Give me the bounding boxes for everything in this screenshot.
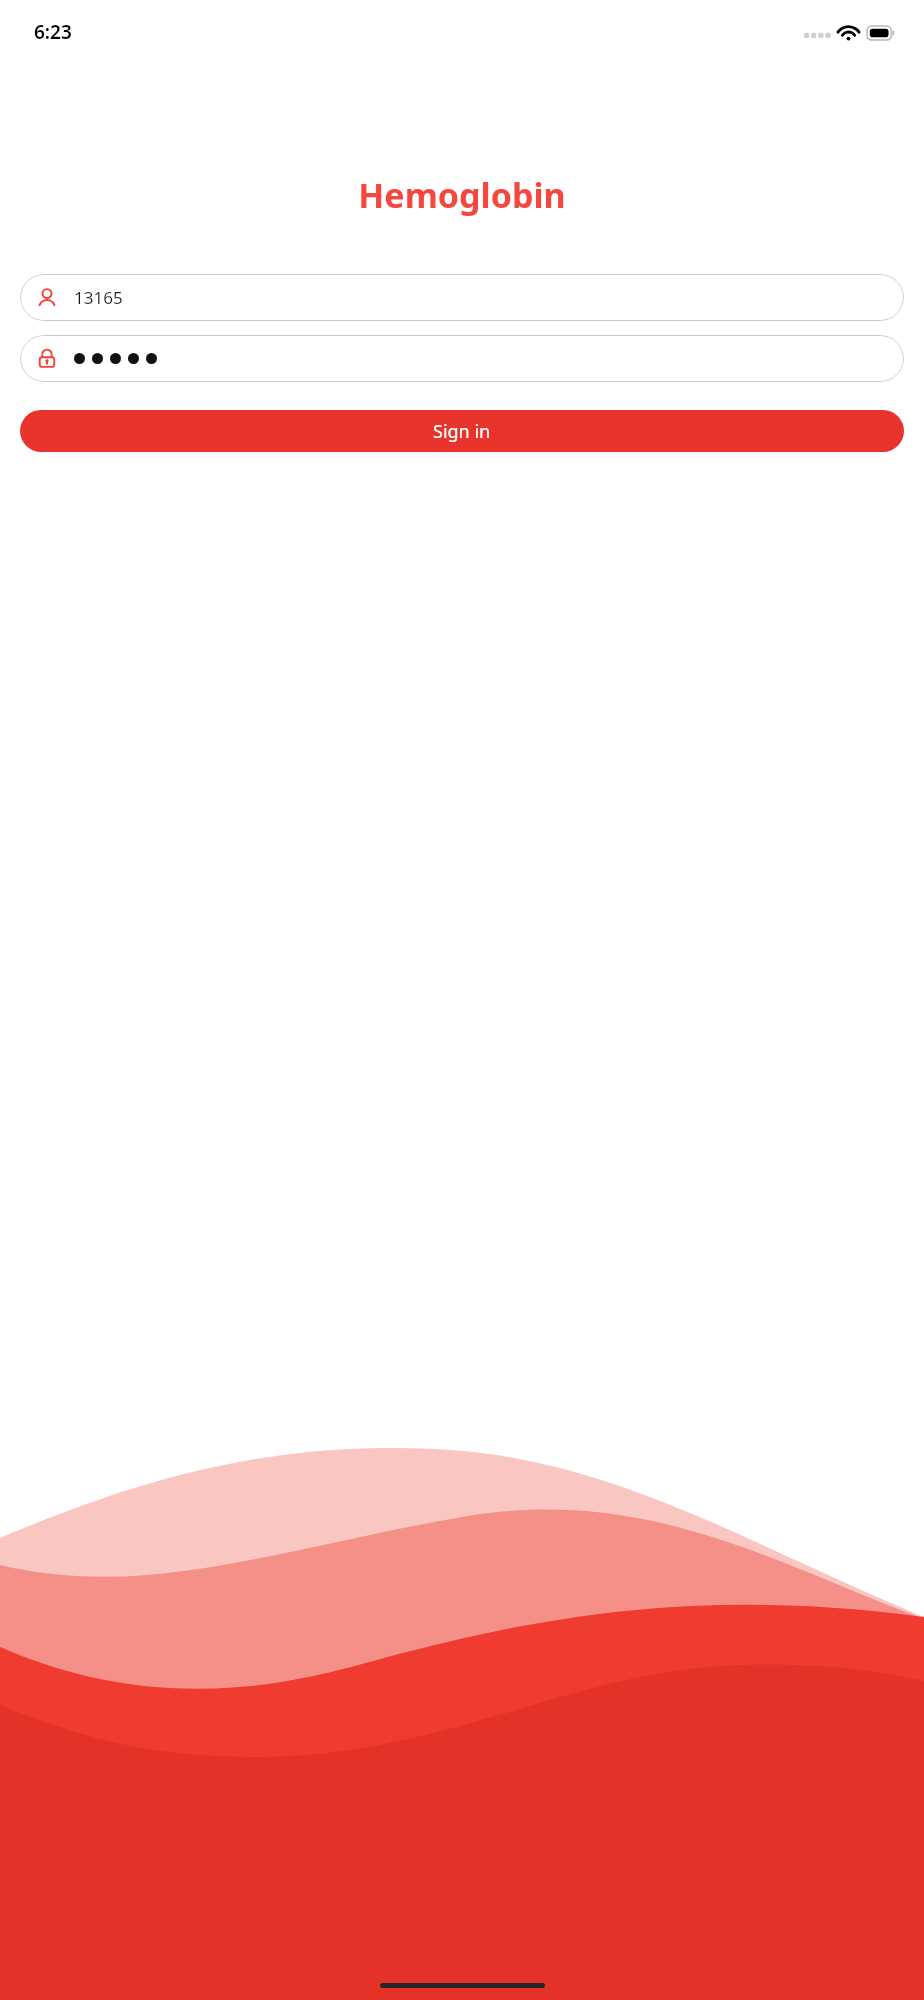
staticText: 13165 [74,286,123,309]
button[interactable]: Username [20,274,904,321]
staticText: Sign in [433,419,491,444]
staticText: 6:23 [34,19,72,45]
button[interactable]: Password [20,335,904,382]
button[interactable]: Sign in [20,410,904,452]
staticText: Hemoglobin [0,172,924,218]
